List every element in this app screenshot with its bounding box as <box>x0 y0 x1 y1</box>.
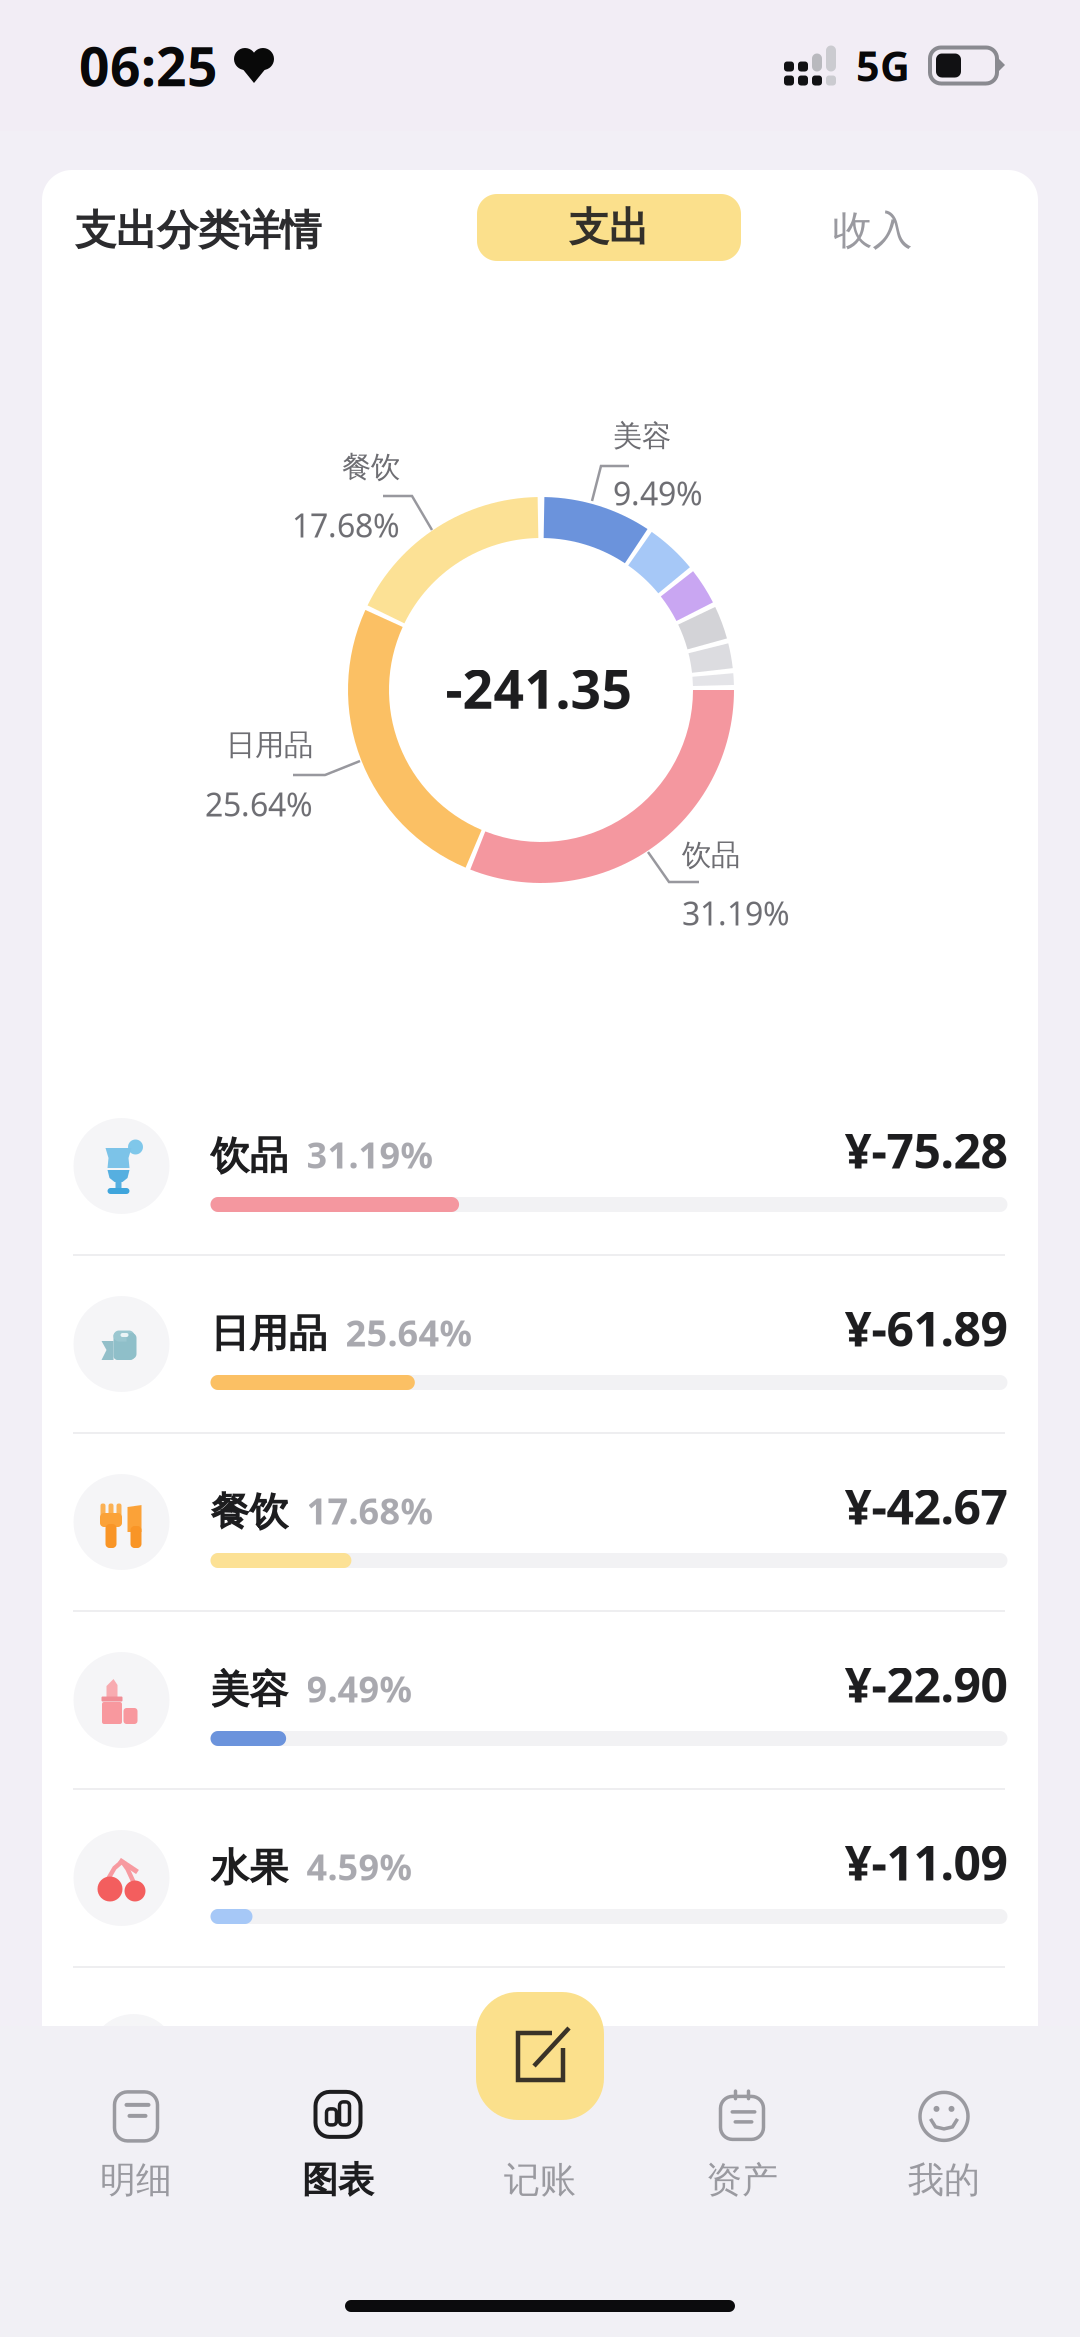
staticText: 餐饮 <box>210 1488 288 1535</box>
staticText: 31.19% <box>306 1131 432 1179</box>
staticText: 收入 <box>832 206 912 255</box>
staticText: 支出分类详情 <box>75 205 321 256</box>
staticText: 06:25 <box>79 30 218 101</box>
button[interactable]: 美容 <box>73 1612 1037 1788</box>
staticText: 25.64% <box>205 783 313 825</box>
staticText: 美容 <box>210 1666 288 1713</box>
staticText: ¥-75.28 <box>844 1118 1007 1182</box>
staticText: 明细 <box>100 2158 172 2202</box>
staticText: 水果 <box>210 1844 288 1891</box>
button[interactable]: 水果 <box>73 1790 1037 1966</box>
staticText: 图表 <box>302 2158 374 2202</box>
button[interactable]: 记账 <box>439 2084 641 2204</box>
staticText: 记账 <box>504 2158 576 2202</box>
staticText: -241.35 <box>445 653 632 723</box>
button[interactable]: 收入 <box>788 197 957 264</box>
staticText: ¥-42.67 <box>844 1474 1007 1538</box>
staticText: 25.64% <box>345 1309 471 1357</box>
staticText: 31.19% <box>682 892 790 934</box>
staticText: 日用品 <box>210 1310 327 1357</box>
button[interactable]: 日用品 <box>73 1256 1037 1432</box>
staticText: 饮品 <box>210 1132 288 1179</box>
staticText: 我的 <box>908 2158 980 2202</box>
button[interactable] <box>89 1968 1021 2144</box>
staticText: ¥-11.09 <box>844 1830 1007 1894</box>
staticText: 9.49% <box>306 1665 411 1713</box>
staticText: 支出 <box>569 203 649 252</box>
staticText: 4.59% <box>306 1843 411 1891</box>
button[interactable]: 图表 <box>237 2084 439 2204</box>
staticText: 日用品 <box>226 727 313 763</box>
staticText: 美容 <box>613 418 671 454</box>
staticText: 9.49% <box>613 472 703 514</box>
staticText: 17.68% <box>292 504 400 546</box>
staticText: 资产 <box>706 2158 778 2202</box>
button[interactable]: 餐饮 <box>73 1434 1037 1610</box>
button[interactable]: 记账 <box>476 1992 604 2120</box>
staticText: 17.68% <box>306 1487 432 1535</box>
staticText: 5G <box>856 38 910 93</box>
staticText: 餐饮 <box>342 449 400 485</box>
button[interactable]: 我的 <box>843 2084 1045 2204</box>
button[interactable]: 明细 <box>35 2084 237 2204</box>
button[interactable]: 支出 <box>477 194 741 261</box>
staticText: ¥-22.90 <box>844 1652 1007 1716</box>
staticText: ¥-61.89 <box>844 1296 1007 1360</box>
staticText: 饮品 <box>682 837 740 873</box>
button[interactable]: 资产 <box>641 2084 843 2204</box>
button[interactable]: 饮品 <box>73 1078 1037 1254</box>
